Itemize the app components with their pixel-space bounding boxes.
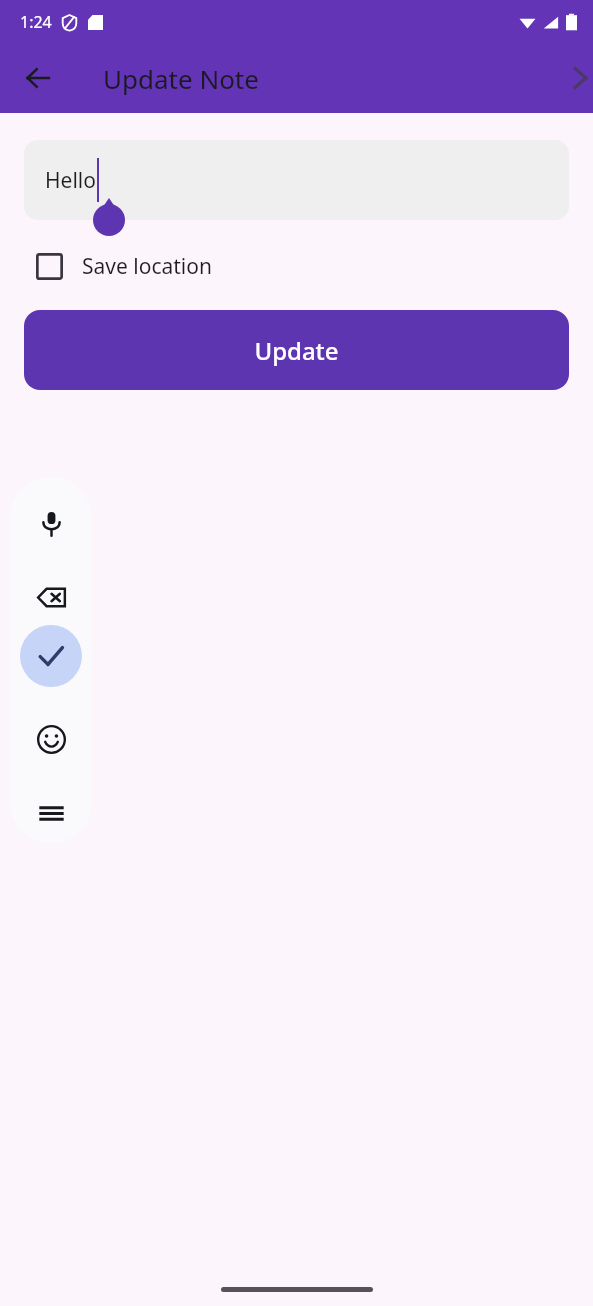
button[interactable]: Backspace bbox=[20, 566, 82, 628]
button[interactable]: Back bbox=[10, 50, 66, 106]
button[interactable]: More bbox=[555, 52, 593, 104]
button[interactable]: Update bbox=[24, 310, 569, 390]
button[interactable]: Menu bbox=[20, 782, 82, 843]
staticText: Update Note bbox=[103, 61, 259, 96]
button[interactable]: Voice input bbox=[20, 492, 82, 554]
staticText: Hello bbox=[45, 166, 96, 195]
button[interactable]: Confirm bbox=[20, 625, 82, 687]
button[interactable]: Hello bbox=[24, 140, 569, 220]
staticText: 1:24 bbox=[20, 11, 52, 33]
staticText: Save location bbox=[82, 252, 212, 281]
button[interactable]: Emoji bbox=[20, 708, 82, 770]
button[interactable]: Save location bbox=[36, 244, 212, 288]
staticText: Update bbox=[254, 334, 339, 367]
